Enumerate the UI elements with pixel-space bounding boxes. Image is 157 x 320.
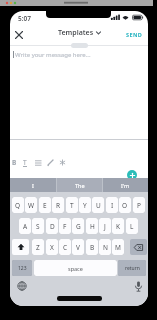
button[interactable]: X bbox=[46, 239, 58, 255]
staticText: return bbox=[125, 265, 140, 272]
staticText: SEND bbox=[126, 31, 143, 38]
staticText: 5:07 bbox=[18, 14, 31, 23]
staticText: V bbox=[76, 243, 80, 252]
staticText: H bbox=[90, 222, 95, 231]
button[interactable] bbox=[17, 281, 27, 291]
staticText: T bbox=[23, 158, 27, 167]
staticText: R bbox=[56, 201, 61, 210]
button[interactable]: S bbox=[32, 218, 44, 234]
button[interactable] bbox=[47, 159, 54, 166]
staticText: E bbox=[43, 201, 47, 210]
staticText: I bbox=[111, 201, 114, 210]
button[interactable]: U bbox=[92, 197, 104, 213]
staticText: N bbox=[103, 243, 108, 252]
staticText: space bbox=[68, 265, 83, 272]
button[interactable]: Templates bbox=[58, 28, 101, 38]
button[interactable] bbox=[59, 159, 66, 166]
button[interactable]: P bbox=[133, 197, 145, 213]
staticText: Q bbox=[15, 201, 21, 210]
staticText: D bbox=[50, 222, 55, 231]
button[interactable] bbox=[134, 281, 143, 292]
button[interactable]: B bbox=[86, 239, 98, 255]
staticText: C bbox=[63, 243, 68, 252]
button[interactable]: Q bbox=[12, 197, 24, 213]
staticText: S bbox=[36, 222, 40, 231]
button[interactable]: 123 bbox=[12, 260, 32, 276]
button[interactable]: T bbox=[66, 197, 78, 213]
button[interactable]: W bbox=[25, 197, 37, 213]
button[interactable]: space bbox=[34, 260, 117, 276]
staticText: M bbox=[115, 243, 121, 252]
button[interactable] bbox=[11, 27, 26, 42]
staticText: Y bbox=[83, 201, 87, 210]
button[interactable]: SEND bbox=[121, 27, 147, 41]
staticText: L bbox=[130, 222, 134, 231]
button[interactable]: return bbox=[118, 260, 146, 276]
button[interactable] bbox=[130, 239, 147, 255]
staticText: I bbox=[32, 182, 34, 189]
button[interactable]: F bbox=[59, 218, 71, 234]
button[interactable]: I bbox=[10, 178, 56, 192]
button[interactable]: I'm bbox=[103, 178, 148, 192]
button[interactable] bbox=[35, 160, 42, 166]
staticText: Templates bbox=[58, 28, 94, 38]
button[interactable]: C bbox=[59, 239, 71, 255]
button[interactable]: L bbox=[126, 218, 138, 234]
button[interactable]: H bbox=[86, 218, 98, 234]
staticText: A bbox=[23, 222, 28, 231]
button[interactable]: E bbox=[39, 197, 51, 213]
staticText: X bbox=[50, 243, 54, 252]
button[interactable]: R bbox=[52, 197, 64, 213]
button[interactable]: D bbox=[46, 218, 58, 234]
staticText: Write your message here... bbox=[15, 51, 91, 59]
staticText: P bbox=[137, 201, 141, 210]
button[interactable]: T bbox=[23, 158, 27, 167]
button[interactable] bbox=[12, 239, 29, 255]
button[interactable]: B bbox=[12, 158, 17, 167]
button[interactable]: G bbox=[72, 218, 84, 234]
button[interactable] bbox=[127, 170, 137, 180]
staticText: F bbox=[63, 222, 67, 231]
staticText: W bbox=[28, 201, 35, 210]
staticText: I'm bbox=[121, 182, 130, 189]
button[interactable]: Y bbox=[79, 197, 91, 213]
staticText: O bbox=[122, 201, 128, 210]
button[interactable]: The bbox=[57, 178, 102, 192]
button[interactable]: A bbox=[19, 218, 31, 234]
staticText: T bbox=[70, 201, 74, 210]
staticText: J bbox=[104, 222, 106, 231]
staticText: 123 bbox=[18, 265, 27, 272]
button[interactable]: J bbox=[99, 218, 111, 234]
button[interactable]: K bbox=[112, 218, 124, 234]
staticText: G bbox=[76, 222, 81, 231]
button[interactable]: Z bbox=[32, 239, 44, 255]
button[interactable]: N bbox=[99, 239, 111, 255]
button[interactable]: V bbox=[72, 239, 84, 255]
button[interactable]: I bbox=[106, 197, 118, 213]
staticText: U bbox=[96, 201, 101, 210]
staticText: The bbox=[75, 182, 85, 189]
staticText: K bbox=[116, 222, 121, 231]
button[interactable]: O bbox=[119, 197, 131, 213]
staticText: Z bbox=[36, 243, 40, 252]
button[interactable]: M bbox=[112, 239, 124, 255]
staticText: B bbox=[90, 243, 95, 252]
